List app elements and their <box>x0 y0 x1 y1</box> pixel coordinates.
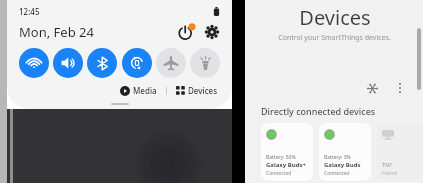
staticText: Battery: 50% <box>266 154 296 161</box>
staticText: TV/Bluetooth <box>382 161 419 169</box>
button[interactable]: Scan for devices <box>363 79 381 97</box>
button[interactable]: Power off <box>176 22 196 42</box>
staticText: Directly connected devices <box>261 105 376 117</box>
staticText: Mon, Feb 24 <box>19 23 94 41</box>
staticText: Battery: 3% <box>324 154 351 161</box>
button[interactable]: Flashlight <box>190 48 220 78</box>
button[interactable]: Bluetooth <box>87 48 117 78</box>
staticText: Galaxy Buds (CB… <box>324 161 367 169</box>
button[interactable]: Sound <box>53 48 83 78</box>
button[interactable]: Airplane mode <box>156 48 186 78</box>
button[interactable]: Settings <box>204 24 220 40</box>
button[interactable]: Auto rotate <box>122 48 152 78</box>
staticText: Connected <box>266 170 292 177</box>
button[interactable]: TV/Bluetooth <box>377 123 423 181</box>
staticText: Connected <box>324 170 350 177</box>
staticText: Devices <box>299 4 371 31</box>
staticText: 12:45 <box>19 6 40 17</box>
staticText: Media <box>133 85 157 96</box>
staticText: Control your SmartThings devices. <box>278 33 391 43</box>
button[interactable]: Battery: 3% <box>319 123 371 181</box>
button[interactable]: Wi-Fi <box>19 48 49 78</box>
button[interactable]: Battery: 50% <box>261 123 313 181</box>
button[interactable]: Devices <box>174 83 220 98</box>
button[interactable]: Media <box>118 83 159 98</box>
staticText: Galaxy Buds+ (F… <box>266 161 309 169</box>
button[interactable]: More options <box>391 79 409 97</box>
staticText: Paired <box>382 170 397 177</box>
staticText: Devices <box>188 85 218 96</box>
